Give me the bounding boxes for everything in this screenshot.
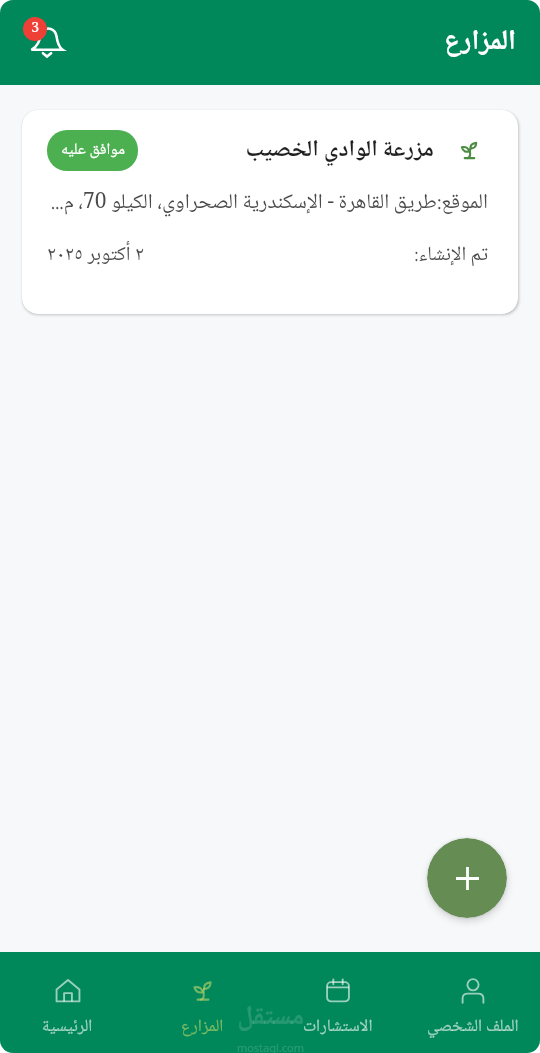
staticText: الموقع:طريق القاهرة - الإسكندرية الصحراو… <box>47 186 488 222</box>
button[interactable]: الملف الشخصي <box>405 957 540 1049</box>
staticText: المزارع <box>181 1013 224 1042</box>
staticText: 3 <box>31 17 39 41</box>
button[interactable]: Add farm <box>427 838 507 918</box>
staticText: تم الإنشاء: <box>414 239 488 273</box>
button[interactable]: الاستشارات <box>270 957 405 1049</box>
staticText: الملف الشخصي <box>427 1013 519 1042</box>
staticText: الاستشارات <box>303 1013 373 1042</box>
button[interactable]: الرئيسية <box>0 957 135 1049</box>
staticText: الرئيسية <box>42 1013 93 1042</box>
staticText: مستقل <box>237 996 304 1040</box>
staticText: mostaql.com <box>236 1040 304 1053</box>
button[interactable]: مزرعة الوادي الخصيب <box>22 110 518 314</box>
button[interactable]: Notifications <box>20 16 74 70</box>
staticText: موافق عليه <box>60 137 125 164</box>
staticText: مزرعة الوادي الخصيب <box>245 131 434 170</box>
staticText: ٢ أكتوبر ٢٠٢٥ <box>47 239 144 273</box>
staticText: المزارع <box>443 19 516 67</box>
button[interactable]: المزارع <box>135 957 270 1049</box>
button[interactable]: موافق عليه <box>47 130 138 171</box>
